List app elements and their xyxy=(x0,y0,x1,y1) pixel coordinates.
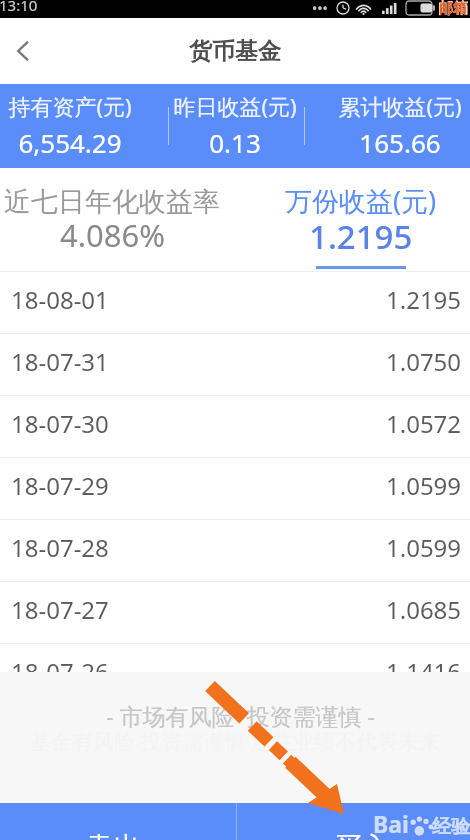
staticText: 18-07-26 xyxy=(11,655,109,672)
button[interactable]: 买入 xyxy=(237,803,470,840)
staticText: - 市场有风险 投资需谨慎 - xyxy=(106,700,375,731)
staticText: 1.0750 xyxy=(386,345,462,378)
staticText: 1.0599 xyxy=(386,531,462,564)
staticText: 1.1416 xyxy=(386,655,462,672)
staticText: 18-07-28 xyxy=(11,531,109,564)
staticText: 经验 xyxy=(432,815,470,839)
button[interactable]: 18-08-01 xyxy=(0,272,470,333)
button[interactable]: 万份收益(元) xyxy=(246,168,470,271)
staticText: 1.0572 xyxy=(386,407,462,440)
button[interactable]: 18-07-27 xyxy=(0,582,470,643)
button[interactable]: 18-07-28 xyxy=(0,520,470,581)
button[interactable]: 卖出 xyxy=(0,803,236,840)
staticText: 万份收益(元) xyxy=(285,182,437,219)
staticText: 18-07-29 xyxy=(11,469,109,502)
button[interactable]: 18-07-29 xyxy=(0,458,470,519)
staticText: 基金有风险 投资需谨慎 过往业绩不代表未来 xyxy=(30,727,440,756)
staticText: 邮箱 xyxy=(439,0,467,18)
staticText: 1.2195 xyxy=(386,283,462,316)
staticText: 买入 xyxy=(334,830,390,840)
staticText: 昨日收益(元) xyxy=(173,91,297,121)
staticText: 持有资产(元) xyxy=(8,91,132,121)
staticText: 累计收益(元) xyxy=(338,91,462,121)
staticText: 货币基金 xyxy=(189,37,281,66)
button[interactable]: 18-07-31 xyxy=(0,334,470,395)
staticText: 18-07-31 xyxy=(11,345,109,378)
staticText: 18-08-01 xyxy=(11,283,109,316)
staticText: 4.086% xyxy=(60,214,165,256)
button[interactable]: Back xyxy=(0,28,46,74)
staticText: 1.2195 xyxy=(309,214,413,259)
staticText: 13:10 xyxy=(0,0,38,13)
staticText: 近七日年化收益率 xyxy=(4,185,220,219)
staticText: 165.66 xyxy=(359,125,441,160)
staticText: Bai xyxy=(373,808,409,839)
staticText: 0.13 xyxy=(209,125,261,160)
button[interactable]: 18-07-26 xyxy=(0,644,470,672)
staticText: 1.0599 xyxy=(386,469,462,502)
staticText: 18-07-30 xyxy=(11,407,109,440)
staticText: 18-07-27 xyxy=(11,593,109,626)
button[interactable]: 近七日年化收益率 xyxy=(0,168,224,271)
button[interactable]: 18-07-30 xyxy=(0,396,470,457)
staticText: 邮箱 xyxy=(438,0,468,17)
staticText: 6,554.29 xyxy=(18,125,122,160)
staticText: 卖出 xyxy=(85,830,141,840)
staticText: ••• xyxy=(312,0,328,17)
staticText: 1.0685 xyxy=(386,593,462,626)
